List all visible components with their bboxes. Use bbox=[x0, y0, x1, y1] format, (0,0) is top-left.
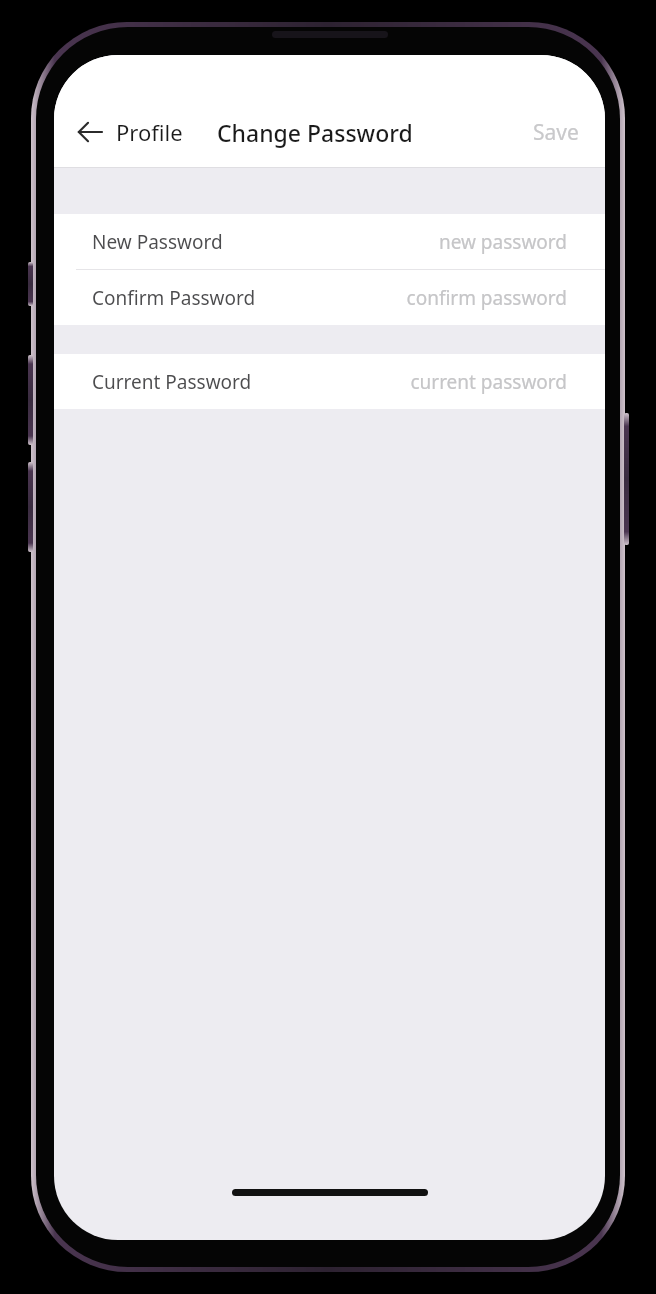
staticText: Save bbox=[533, 118, 579, 147]
button[interactable]: Current Password bbox=[54, 354, 605, 409]
button[interactable]: Back bbox=[68, 110, 112, 154]
staticText: Profile bbox=[116, 117, 183, 147]
staticText: Current Password bbox=[92, 369, 252, 395]
staticText: Confirm Password bbox=[92, 285, 256, 311]
staticText: confirm password bbox=[406, 285, 567, 311]
button[interactable]: Confirm Password bbox=[54, 270, 605, 325]
button[interactable]: Save bbox=[525, 118, 587, 147]
button[interactable]: Profile bbox=[116, 117, 183, 147]
button[interactable]: New Password bbox=[54, 214, 605, 269]
staticText: New Password bbox=[92, 229, 223, 255]
staticText: Change Password bbox=[217, 117, 413, 148]
staticText: new password bbox=[438, 229, 567, 255]
staticText: current password bbox=[410, 369, 567, 395]
